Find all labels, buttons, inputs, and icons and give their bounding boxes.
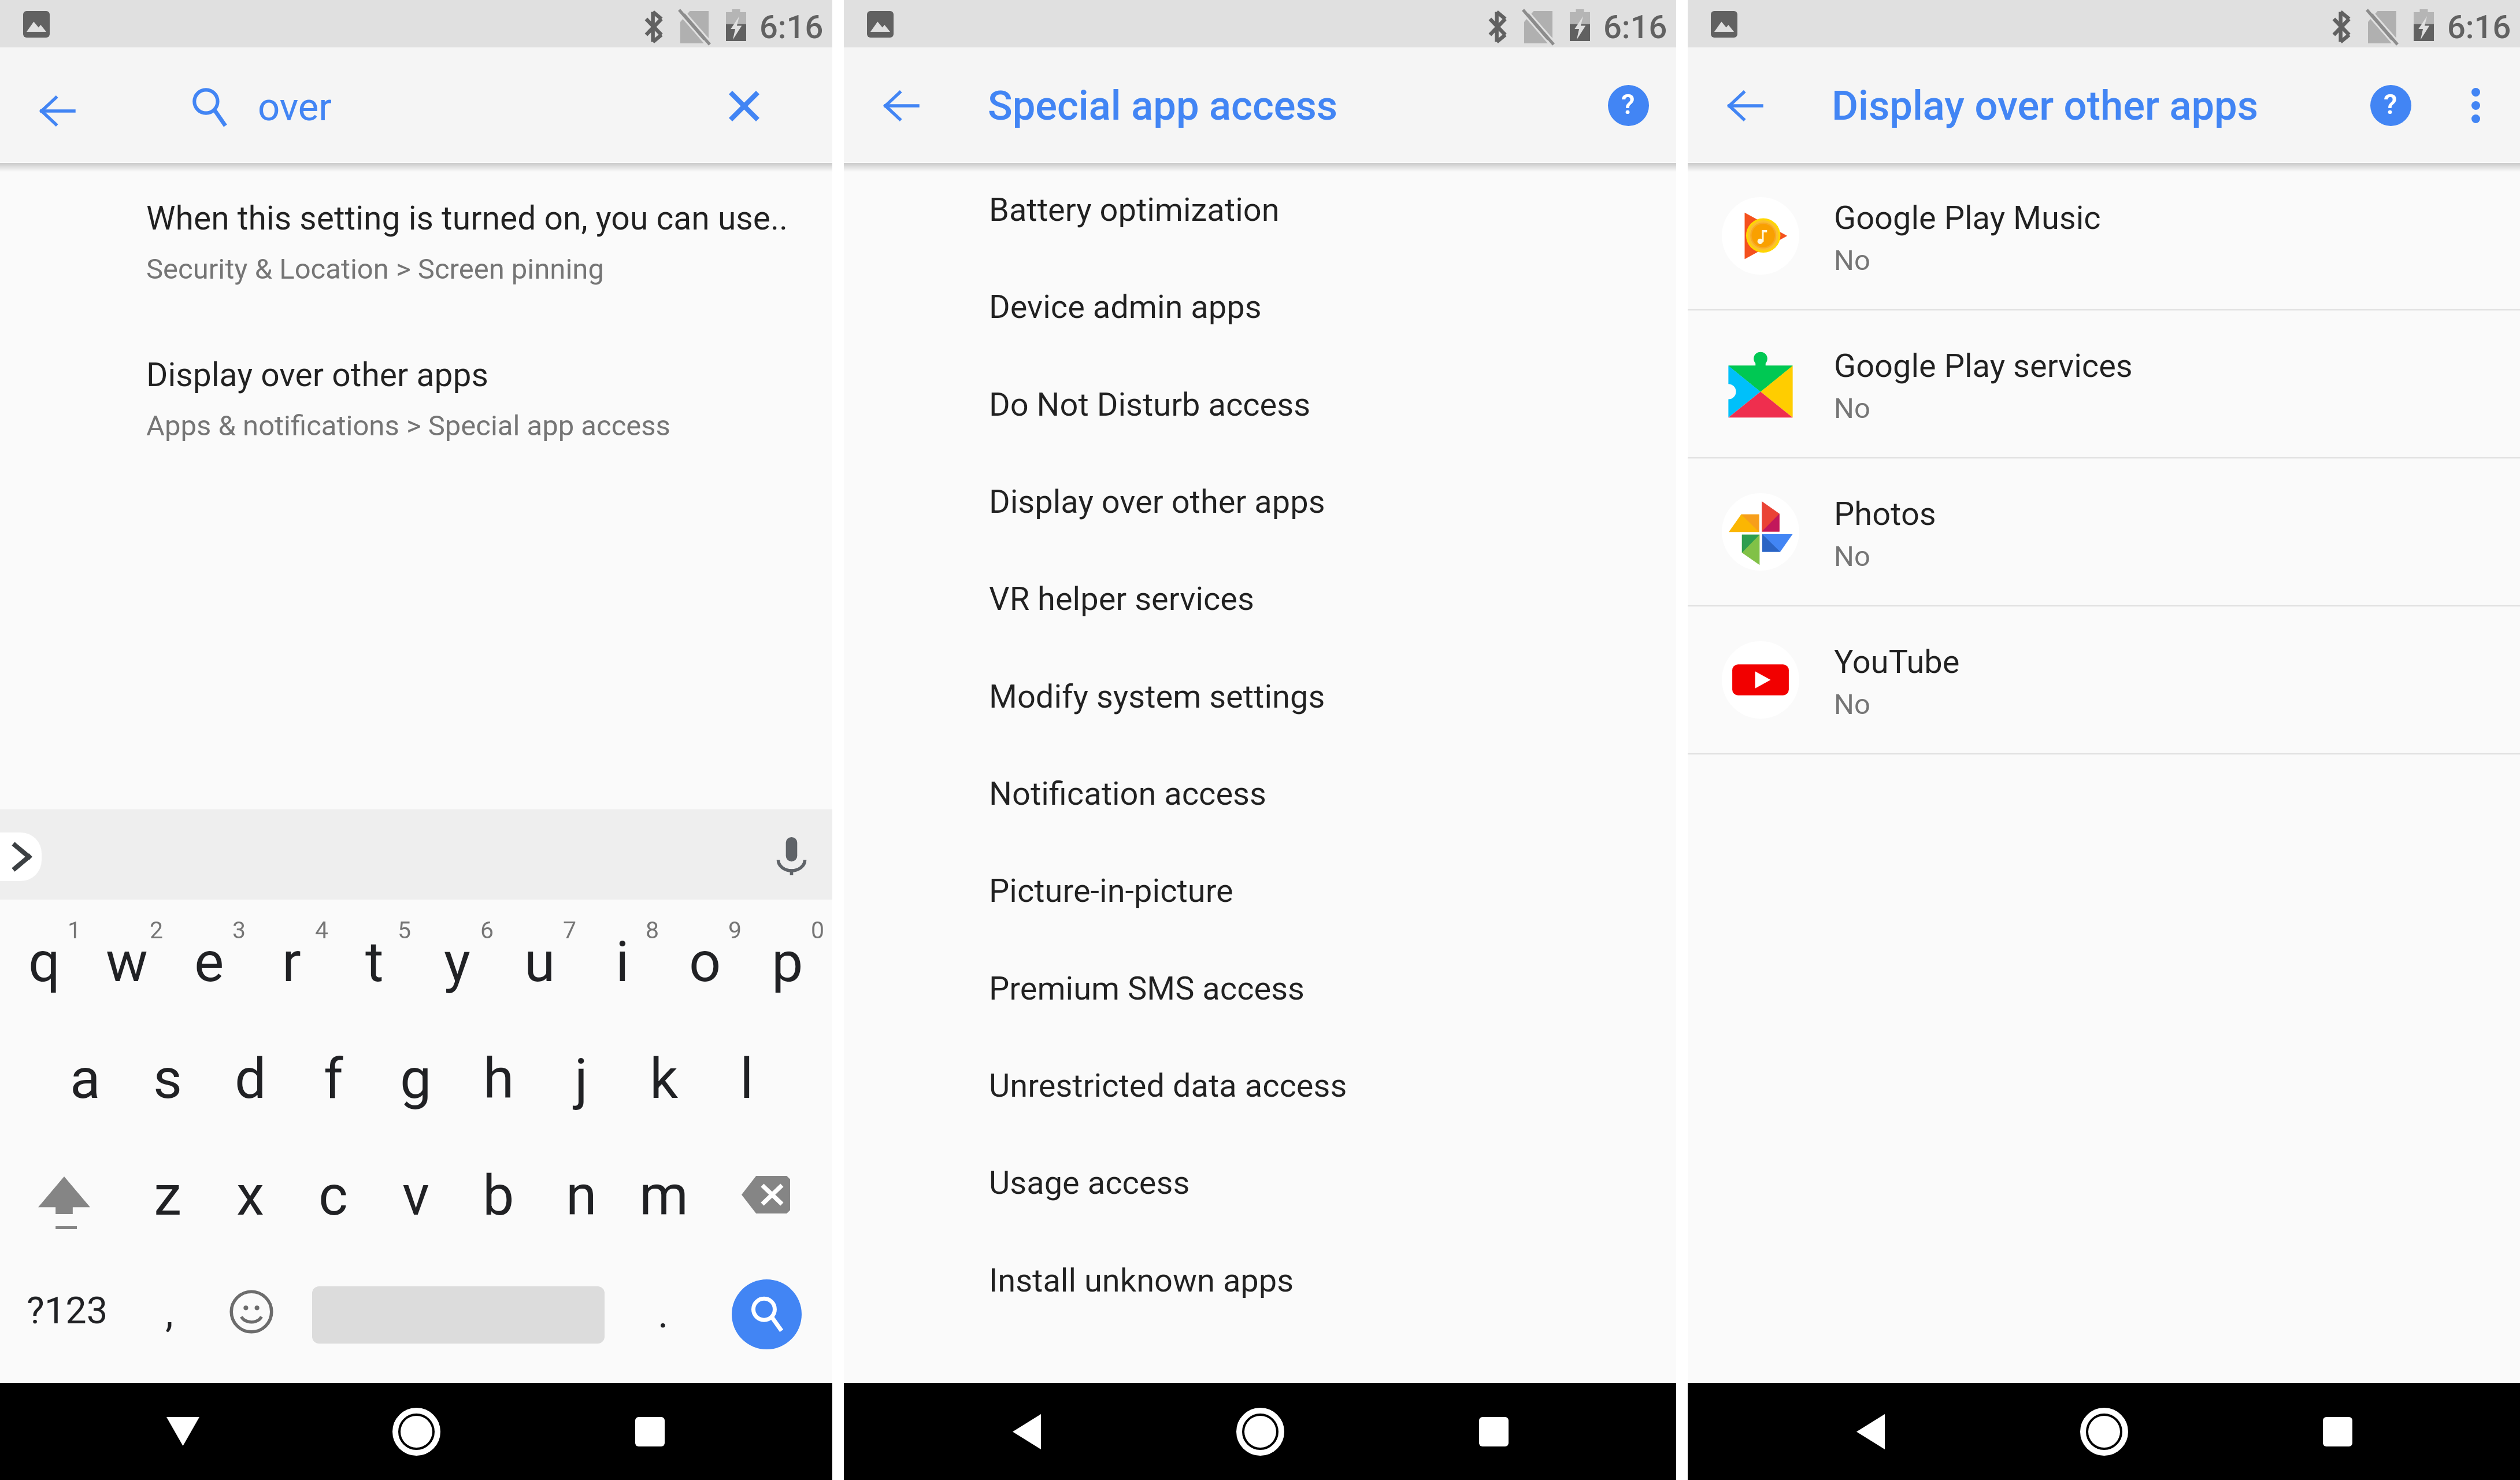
button[interactable]: Back [1824, 1385, 1917, 1478]
staticText: t [365, 929, 384, 995]
button[interactable]: Display over other apps [844, 454, 1676, 552]
staticText: a [70, 1046, 101, 1112]
button[interactable]: Device admin apps [844, 260, 1676, 357]
button[interactable]: 7 [498, 900, 581, 1016]
staticText: Display over other apps [146, 356, 488, 394]
staticText: No [1834, 244, 1870, 277]
button[interactable]: Shift [3, 1133, 127, 1250]
button[interactable]: Navigate up [1704, 65, 1785, 146]
button[interactable]: 6 [416, 900, 498, 1016]
button[interactable]: 9 [664, 900, 746, 1016]
staticText: 6 [480, 916, 494, 944]
button[interactable]: Search [706, 1250, 825, 1367]
staticText: Display over other apps [1832, 82, 2259, 130]
button[interactable]: a [44, 1016, 127, 1133]
button[interactable]: . [625, 1250, 701, 1367]
staticText: ? [1621, 88, 1635, 120]
button[interactable]: Recent apps [1447, 1385, 1540, 1478]
button[interactable]: 1 [3, 900, 86, 1016]
button[interactable]: Home [2058, 1385, 2150, 1478]
staticText: r [282, 929, 301, 995]
staticText: ? [2384, 88, 2397, 120]
button[interactable]: l [705, 1016, 788, 1133]
button[interactable]: ?123 [3, 1250, 131, 1367]
button[interactable]: Unrestricted data access [844, 1038, 1676, 1135]
button[interactable]: s [127, 1016, 209, 1133]
button[interactable]: d [209, 1016, 292, 1133]
button[interactable]: 3 [168, 900, 250, 1016]
staticText: 9 [728, 916, 742, 944]
button[interactable]: Navigate up [860, 65, 941, 146]
staticText: n [566, 1163, 597, 1229]
button[interactable]: m [622, 1133, 705, 1250]
staticText: ?123 [27, 1289, 108, 1333]
button[interactable]: Premium SMS access [844, 941, 1676, 1038]
button[interactable]: k [622, 1016, 705, 1133]
staticText: VR helper services [989, 580, 1254, 618]
button[interactable]: n [540, 1133, 622, 1250]
staticText: 1 [68, 916, 81, 944]
button[interactable]: Recent apps [603, 1385, 696, 1478]
button[interactable]: h [457, 1016, 540, 1133]
button[interactable]: , [131, 1250, 206, 1367]
button[interactable]: 2 [86, 900, 168, 1016]
button[interactable]: Home [370, 1385, 462, 1478]
staticText: c [318, 1163, 348, 1229]
button[interactable]: Voice input [759, 824, 823, 888]
button[interactable]: 4 [250, 900, 333, 1016]
button[interactable]: Notification access [844, 746, 1676, 843]
button[interactable]: Install unknown apps [844, 1233, 1676, 1330]
button[interactable]: VR helper services [844, 552, 1676, 649]
staticText: u [524, 929, 555, 995]
button[interactable]: b [457, 1133, 540, 1250]
button[interactable]: Picture-in-picture [844, 843, 1676, 941]
button[interactable]: Space [292, 1250, 623, 1367]
button[interactable]: g [375, 1016, 457, 1133]
staticText: YouTube [1834, 643, 1960, 681]
button[interactable]: When this setting is turned on, you can … [0, 162, 832, 318]
staticText: Do Not Disturb access [989, 386, 1311, 424]
button[interactable]: Help [1593, 71, 1663, 140]
button[interactable]: Back [980, 1385, 1073, 1478]
button[interactable]: c [292, 1133, 375, 1250]
staticText: Display over other apps [989, 483, 1325, 521]
button[interactable]: Clear search [709, 71, 779, 140]
button[interactable]: Do Not Disturb access [844, 357, 1676, 454]
button[interactable]: Photos [1688, 458, 2520, 605]
staticText: Apps & notifications > Special app acces… [146, 409, 670, 442]
button[interactable]: Google Play Music [1688, 162, 2520, 309]
staticText: 5 [398, 916, 412, 944]
staticText: 6:16 [1603, 8, 1667, 46]
staticText: Special app access [988, 82, 1338, 130]
button[interactable]: Help [2356, 71, 2425, 140]
button[interactable]: 8 [581, 900, 664, 1016]
staticText: 2 [150, 916, 164, 944]
button[interactable]: Home [1214, 1385, 1306, 1478]
button[interactable]: Usage access [844, 1135, 1676, 1233]
button[interactable]: Battery optimization [844, 162, 1676, 260]
button[interactable]: 5 [333, 900, 416, 1016]
button[interactable]: x [209, 1133, 292, 1250]
button[interactable]: 0 [746, 900, 829, 1016]
button[interactable]: Display over other apps [0, 318, 832, 473]
button[interactable]: Google Play services [1688, 310, 2520, 457]
button[interactable]: More options [2441, 71, 2510, 140]
button[interactable]: v [375, 1133, 457, 1250]
button[interactable]: Modify system settings [844, 649, 1676, 746]
button[interactable]: j [540, 1016, 622, 1133]
staticText: x [236, 1163, 265, 1229]
button[interactable]: Backspace [705, 1133, 829, 1250]
staticText: h [483, 1046, 514, 1112]
button[interactable]: Navigate up [16, 71, 97, 151]
button[interactable]: Recent apps [2291, 1385, 2384, 1478]
button[interactable]: z [127, 1133, 209, 1250]
staticText: 7 [563, 916, 577, 944]
button[interactable]: Show more suggestions [0, 832, 42, 881]
button[interactable]: Hide keyboard [136, 1385, 229, 1478]
staticText: 6:16 [2447, 8, 2511, 46]
button[interactable]: f [292, 1016, 375, 1133]
button[interactable]: Emoji [214, 1250, 289, 1367]
button[interactable]: YouTube [1688, 606, 2520, 753]
staticText: y [444, 929, 470, 995]
staticText: o [689, 929, 721, 995]
